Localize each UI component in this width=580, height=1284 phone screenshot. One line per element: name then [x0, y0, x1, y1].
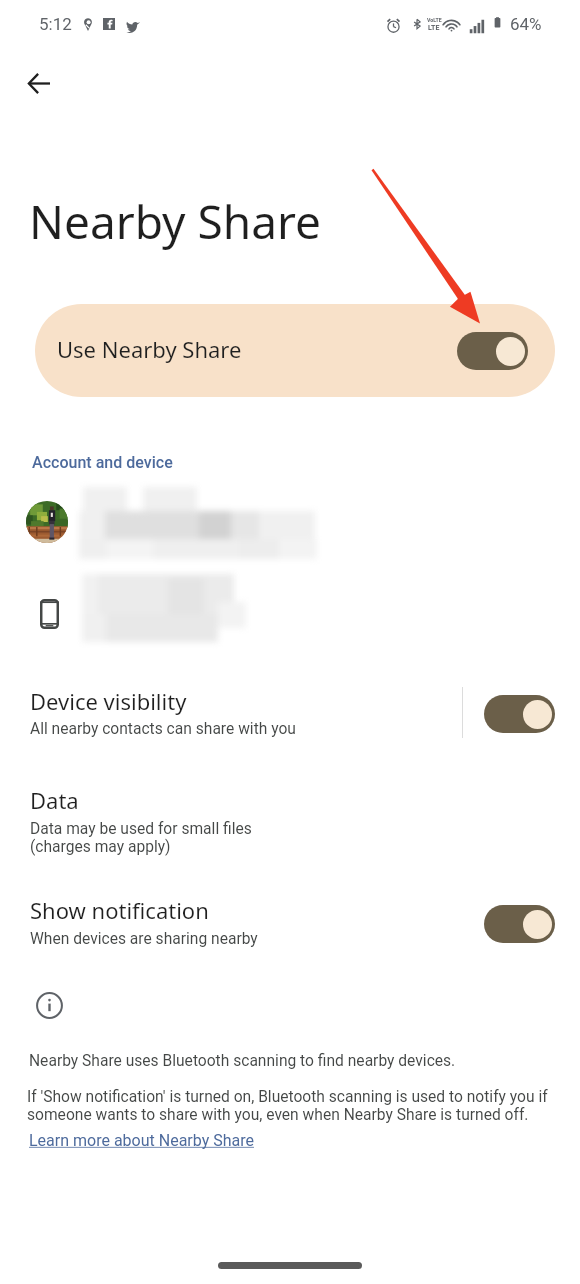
- staticText: Use Nearby Share: [57, 334, 242, 364]
- staticText: When devices are sharing nearby: [30, 930, 258, 948]
- button[interactable]: Toggle switch: [484, 695, 555, 733]
- staticText: 64%: [510, 14, 542, 34]
- staticText: Nearby Share uses Bluetooth scanning to …: [29, 1052, 456, 1070]
- button[interactable]: Data: [0, 774, 580, 860]
- staticText: 5:12: [39, 14, 72, 34]
- staticText: Show notification: [30, 895, 209, 925]
- button[interactable]: [0, 572, 580, 640]
- staticText: Device visibility: [30, 686, 187, 716]
- staticText: VoLTE: [427, 17, 442, 23]
- button[interactable]: [0, 485, 580, 559]
- button[interactable]: Toggle switch: [484, 905, 555, 943]
- button[interactable]: Back: [15, 59, 63, 107]
- staticText: Learn more about Nearby Share: [29, 1131, 254, 1150]
- staticText: Account and device: [32, 453, 173, 472]
- staticText: Data may be used for small files (charge…: [30, 820, 252, 856]
- staticText: Nearby Share: [29, 190, 322, 253]
- button[interactable]: Device visibility: [0, 674, 580, 742]
- button[interactable]: Show notification: [0, 883, 580, 951]
- staticText: All nearby contacts can share with you: [30, 720, 296, 738]
- button[interactable]: Use Nearby Share: [35, 304, 555, 397]
- staticText: LTE: [428, 24, 440, 32]
- staticText: If 'Show notification' is turned on, Blu…: [27, 1088, 573, 1124]
- staticText: Data: [30, 785, 79, 815]
- button[interactable]: Learn more about Nearby Share: [29, 1131, 254, 1150]
- button[interactable]: Toggle switch: [457, 332, 528, 370]
